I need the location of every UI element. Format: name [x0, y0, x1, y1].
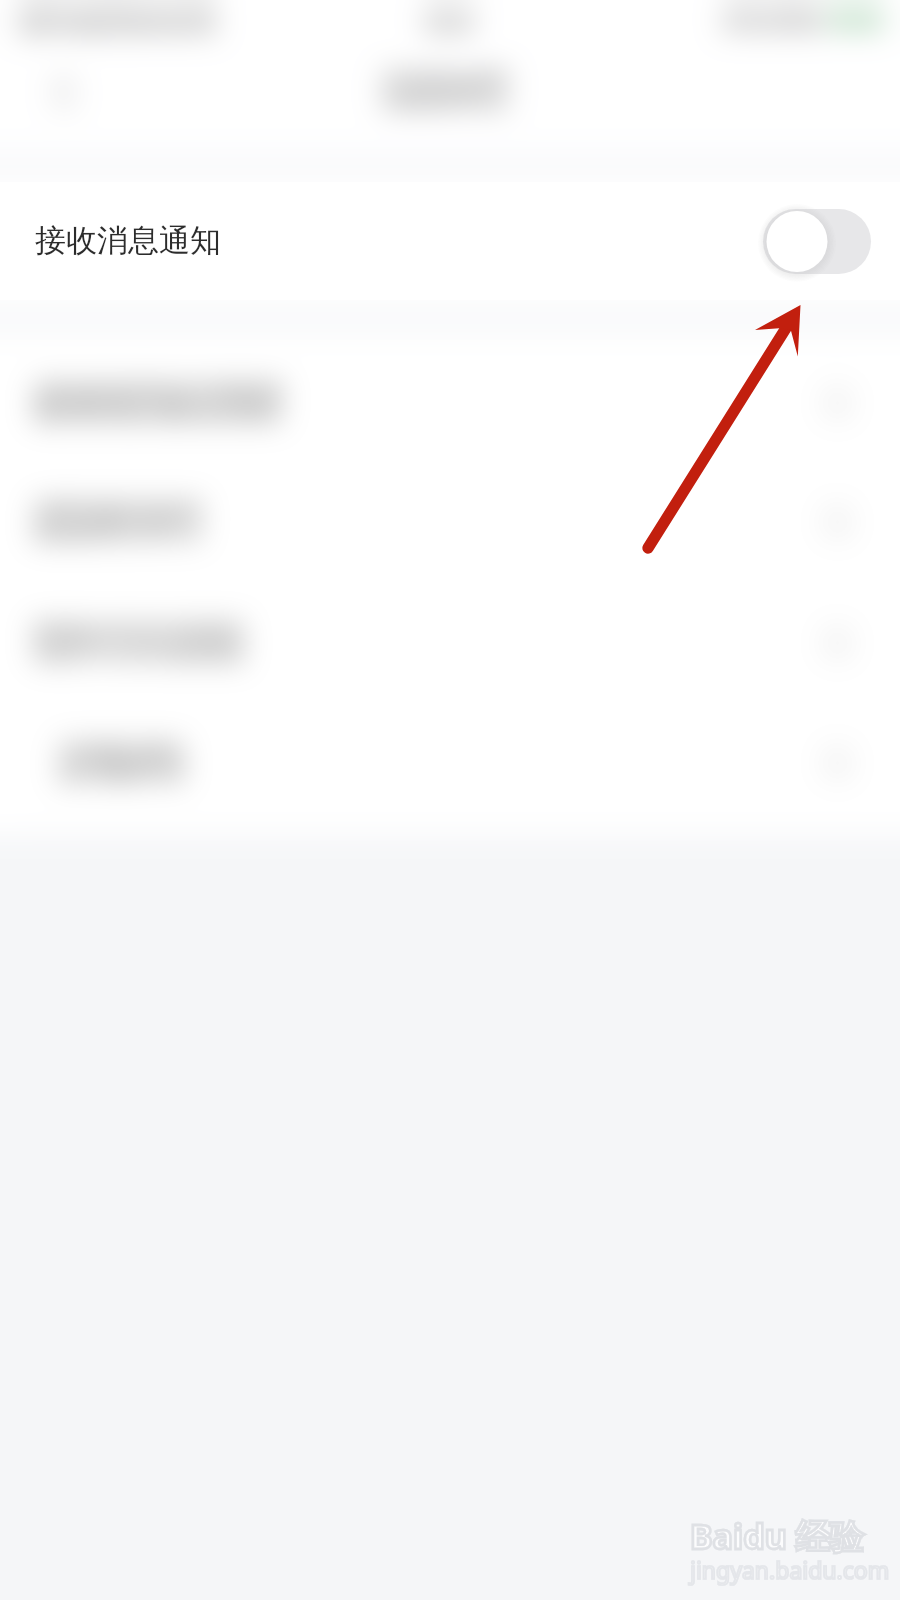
staticText: Baidu 经验	[690, 1513, 864, 1559]
staticText: 接收消息通知	[35, 221, 221, 260]
button[interactable]: Receive message notifications toggle	[763, 208, 871, 275]
staticText: jingyan.baidu.com	[690, 1554, 890, 1585]
button[interactable]: 接收消息通知	[0, 182, 900, 300]
staticText: jingyan.baidu.com	[690, 1554, 890, 1585]
staticText: Baidu 经验	[690, 1513, 864, 1559]
